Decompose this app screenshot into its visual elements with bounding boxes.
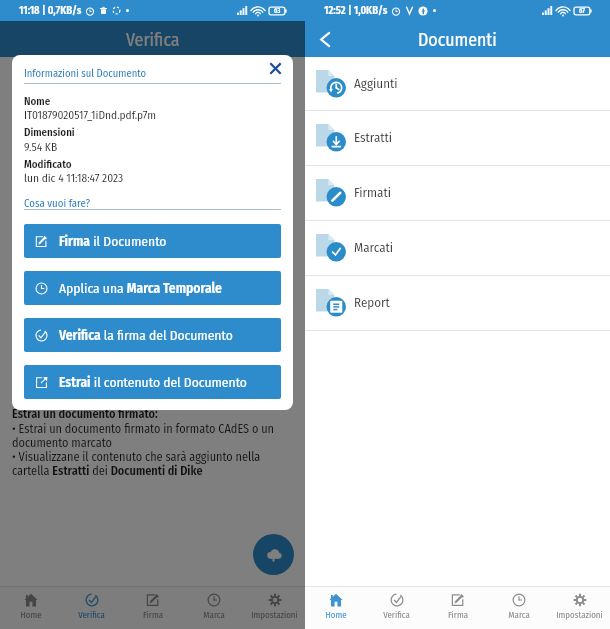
staticText: Marca [203, 610, 225, 621]
button[interactable]: Aggiunti [305, 57, 610, 110]
staticText: Home [325, 610, 347, 621]
staticText: Firma [448, 610, 468, 621]
staticText: Verifica la firma del Documento [59, 327, 233, 343]
staticText: 12:52 | 1,0KB/s [324, 4, 388, 17]
staticText: Home [20, 610, 42, 621]
staticText: Applica una Marca Temporale [59, 280, 222, 296]
button[interactable]: Home [0, 587, 61, 629]
button[interactable]: Estratti [305, 111, 610, 165]
button[interactable]: Verifica la firma del Documento [24, 318, 281, 352]
staticText: lun dic 4 11:18:47 2023 [24, 171, 124, 185]
staticText: Documenti [418, 29, 497, 50]
button[interactable]: Firma il Documento [24, 224, 281, 258]
staticText: Cosa vuoi fare? [24, 197, 90, 210]
staticText: Verifica [78, 610, 105, 621]
staticText: 63 [274, 7, 281, 15]
button[interactable]: Verifica [61, 587, 122, 629]
staticText: IT01879020517_1iDnd.pdf.p7m [24, 108, 156, 122]
staticText: Verifica [383, 610, 410, 621]
button[interactable]: Firmati [305, 166, 610, 220]
button[interactable]: Marcati [305, 221, 610, 275]
button[interactable]: Impostazioni [549, 587, 610, 629]
button[interactable]: Marca [488, 587, 549, 629]
staticText: Estrai il contenuto del Documento [59, 374, 247, 390]
button[interactable]: Back [310, 24, 340, 54]
staticText: Nome [24, 95, 51, 108]
staticText: Informazioni sul Documento [24, 67, 147, 80]
button[interactable]: Upload [253, 534, 294, 575]
button[interactable]: Marca [183, 587, 244, 629]
staticText: Firmati [354, 185, 391, 201]
staticText: Estrai un documento firmato: • Estrai un… [12, 407, 293, 478]
staticText: Dimensioni [24, 126, 75, 139]
button[interactable]: Report [305, 276, 610, 330]
button[interactable]: Applica una Marca Temporale [24, 271, 281, 305]
button[interactable]: Impostazioni [244, 587, 305, 629]
button[interactable]: Estrai il contenuto del Documento [24, 365, 281, 399]
staticText: Firma [143, 610, 163, 621]
staticText: 9.54 KB [24, 140, 58, 154]
staticText: Marca [508, 610, 530, 621]
staticText: 67 [579, 7, 585, 15]
staticText: Verifica [126, 29, 180, 50]
staticText: 11:18 | 0,7KB/s [19, 4, 82, 17]
button[interactable]: Firma [427, 587, 488, 629]
staticText: Estratti [354, 130, 393, 146]
staticText: Impostazioni [251, 610, 298, 621]
staticText: Firma il Documento [59, 233, 167, 249]
button[interactable]: Close [261, 55, 289, 82]
staticText: Modificato [24, 158, 72, 171]
staticText: Marcati [354, 240, 394, 256]
button[interactable]: Home [305, 587, 366, 629]
staticText: Report [354, 295, 390, 311]
button[interactable]: Firma [122, 587, 183, 629]
staticText: Aggiunti [354, 76, 398, 92]
button[interactable]: Verifica [366, 587, 427, 629]
staticText: Impostazioni [556, 610, 603, 621]
